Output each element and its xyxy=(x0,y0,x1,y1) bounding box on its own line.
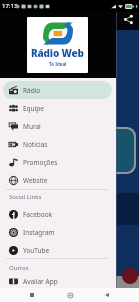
staticText: YouTube xyxy=(23,246,50,255)
button[interactable]: Notícias xyxy=(3,135,112,153)
button[interactable]: Home xyxy=(65,290,75,300)
button[interactable]: YouTube xyxy=(3,241,112,259)
button[interactable]: Facebook xyxy=(3,205,112,223)
staticText: Instagram xyxy=(23,228,55,237)
staticText: Te Ideal xyxy=(49,61,67,67)
staticText: Rádio Web xyxy=(31,46,84,60)
staticText: Avaliar App xyxy=(23,277,58,286)
button[interactable]: Recents xyxy=(27,290,37,300)
staticText: 17:13 xyxy=(2,2,18,10)
staticText: Mural xyxy=(23,122,41,131)
button[interactable]: Avaliar App xyxy=(3,272,112,290)
staticText: Rádio xyxy=(23,86,41,95)
button[interactable]: Share xyxy=(122,13,135,26)
button[interactable]: Back xyxy=(102,290,112,300)
staticText: Website xyxy=(23,176,48,185)
staticText: Facebook xyxy=(23,210,53,219)
staticText: Equipe xyxy=(23,104,44,113)
staticText: Social Links xyxy=(9,193,42,201)
staticText: Notícias xyxy=(23,140,48,149)
staticText: Outros xyxy=(9,264,29,272)
button[interactable]: Website xyxy=(3,171,112,189)
button[interactable]: Instagram xyxy=(3,223,112,241)
button[interactable]: Rádio xyxy=(3,81,112,99)
staticText: Promoções xyxy=(23,158,58,167)
button[interactable]: Mural xyxy=(3,117,112,135)
button[interactable]: Promoções xyxy=(3,153,112,171)
button[interactable]: Equipe xyxy=(3,99,112,117)
